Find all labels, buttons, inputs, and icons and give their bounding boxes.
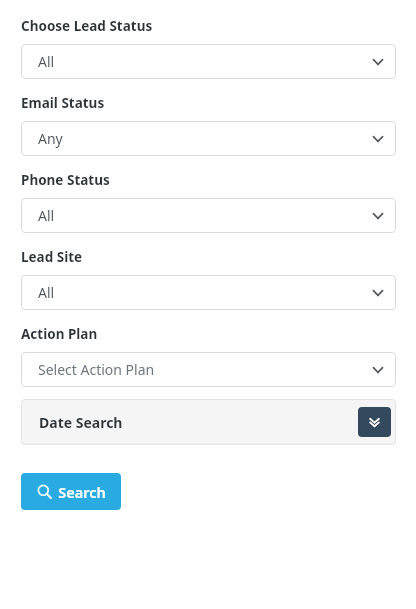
button[interactable]: Search	[21, 473, 121, 510]
staticText: Any	[38, 129, 63, 148]
staticText: Search	[58, 482, 106, 502]
button[interactable]: Date Search	[21, 399, 396, 445]
button[interactable]: Any	[21, 121, 396, 156]
staticText: All	[38, 283, 55, 302]
staticText: Phone Status	[21, 171, 110, 189]
staticText: Email Status	[21, 94, 105, 112]
button[interactable]: All	[21, 44, 396, 79]
staticText: All	[38, 206, 55, 225]
button[interactable]: All	[21, 275, 396, 310]
staticText: Lead Site	[21, 248, 83, 266]
staticText: Date Search	[39, 413, 123, 432]
staticText: Choose Lead Status	[21, 17, 153, 35]
staticText: Select Action Plan	[38, 360, 155, 379]
staticText: All	[38, 52, 55, 71]
staticText: Action Plan	[21, 325, 98, 343]
button[interactable]: All	[21, 198, 396, 233]
button[interactable]: Select Action Plan	[21, 352, 396, 387]
button[interactable]: Expand date search	[358, 407, 391, 437]
